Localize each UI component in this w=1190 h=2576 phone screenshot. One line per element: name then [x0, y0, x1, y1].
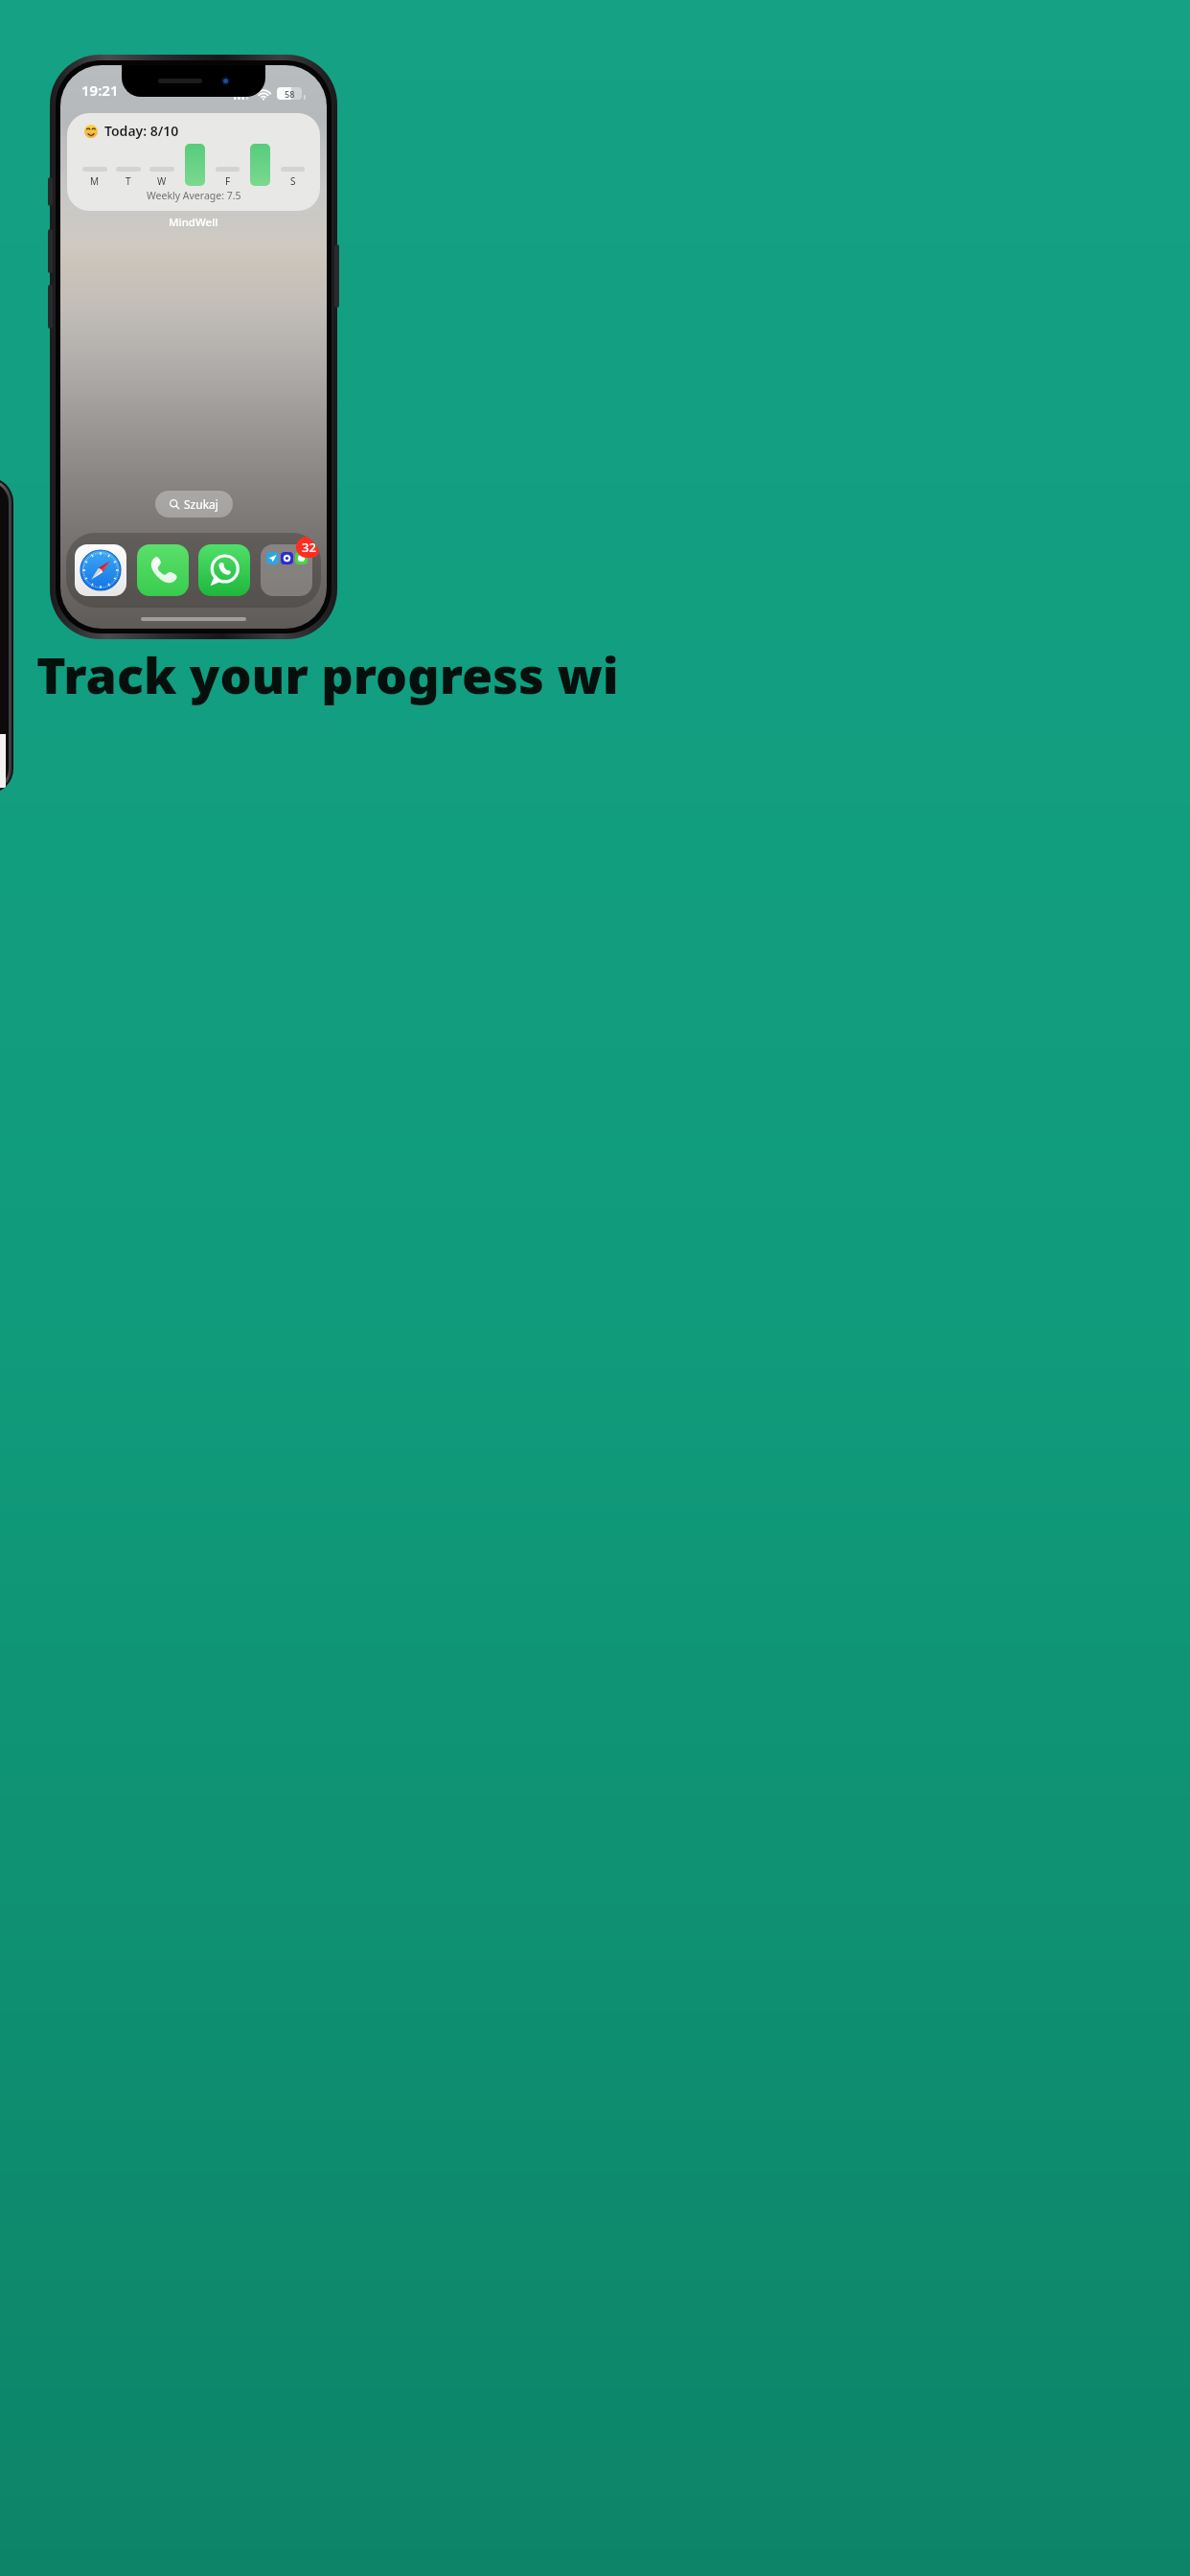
staticText: Today: 8/10 — [104, 122, 179, 140]
button[interactable]: Today: 8/10 — [67, 113, 320, 211]
staticText: 32 — [302, 539, 316, 556]
staticText: Weekly Average: 7.5 — [147, 189, 241, 202]
button[interactable]: WhatsApp — [198, 544, 250, 596]
button[interactable]: Phone — [137, 544, 189, 596]
button[interactable]: Safari — [75, 544, 126, 596]
staticText: W — [157, 174, 167, 188]
staticText: MindWell — [169, 215, 218, 230]
staticText: Track your progress wi — [36, 640, 619, 708]
button[interactable]: Messaging folder — [261, 544, 312, 596]
staticText: F — [225, 174, 231, 188]
staticText: 19:21 — [81, 80, 119, 100]
staticText: S — [290, 174, 296, 188]
staticText: T — [126, 174, 131, 188]
staticText: 58 — [285, 88, 295, 100]
staticText: M — [90, 174, 100, 188]
staticText: Szukaj — [184, 496, 218, 512]
button[interactable]: Szukaj — [155, 491, 233, 517]
